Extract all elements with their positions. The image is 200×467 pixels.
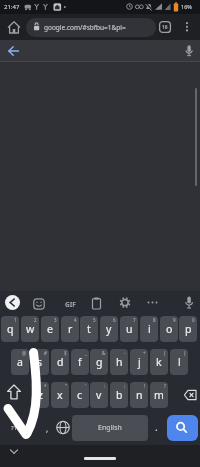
staticText: w [26, 322, 35, 336]
staticText: 16 [162, 24, 168, 31]
button[interactable]: f [71, 349, 89, 375]
button[interactable]: v [90, 382, 108, 408]
staticText: 5 [93, 317, 96, 323]
staticText: - [124, 350, 126, 356]
button[interactable]: d [51, 349, 69, 375]
button[interactable] [145, 296, 159, 310]
button[interactable]: s [31, 349, 49, 375]
button[interactable] [2, 415, 40, 441]
staticText: e [47, 322, 53, 336]
staticText: 2 [34, 317, 37, 323]
staticText: h [116, 355, 123, 369]
button[interactable]: h [110, 349, 128, 375]
staticText: * [44, 383, 47, 389]
staticText: m [154, 388, 164, 402]
button[interactable] [180, 42, 198, 60]
staticText: 6 [113, 317, 116, 323]
staticText: v [96, 388, 102, 402]
button[interactable] [26, 18, 156, 37]
staticText: . [155, 420, 158, 434]
button[interactable]: k [150, 349, 168, 375]
button[interactable]: w [21, 316, 39, 342]
staticText: # [44, 350, 47, 356]
button[interactable]: t [80, 316, 98, 342]
button[interactable]: g [90, 349, 108, 375]
button[interactable] [5, 444, 23, 460]
staticText: 0 [192, 317, 195, 323]
button[interactable]: i [140, 316, 158, 342]
staticText: p [185, 322, 192, 336]
staticText: ?123 [11, 424, 24, 432]
button[interactable]: o [160, 316, 178, 342]
staticText: j [138, 355, 141, 369]
button[interactable]: n [130, 382, 148, 408]
staticText: g [96, 355, 103, 369]
button[interactable]: r [61, 316, 79, 342]
button[interactable] [2, 382, 28, 408]
button[interactable] [150, 415, 164, 441]
staticText: 9 [173, 317, 176, 323]
button[interactable] [181, 19, 195, 35]
button[interactable] [167, 415, 198, 441]
staticText: 21:47 [4, 3, 20, 11]
staticText: google.com/#sbfbu=1&pi= [44, 23, 126, 32]
button[interactable] [89, 297, 104, 311]
staticText: : [104, 383, 106, 389]
button[interactable]: z [31, 382, 49, 408]
button[interactable]: 16 [159, 21, 171, 33]
staticText: d [57, 355, 64, 369]
staticText: _ [85, 350, 87, 356]
button[interactable]: a [11, 349, 29, 375]
staticText: GIF [65, 300, 76, 309]
staticText: 8 [153, 317, 156, 323]
button[interactable] [84, 457, 116, 460]
button[interactable]: c [71, 382, 89, 408]
button[interactable] [5, 295, 20, 310]
button[interactable]: m [150, 382, 168, 408]
button[interactable] [118, 296, 132, 310]
button[interactable]: l [170, 349, 188, 375]
staticText: 3 [54, 317, 57, 323]
button[interactable] [172, 382, 198, 408]
button[interactable] [32, 297, 46, 311]
button[interactable]: y [100, 316, 118, 342]
staticText: ( [164, 350, 166, 356]
button[interactable] [62, 297, 82, 311]
staticText: u [126, 322, 133, 336]
button[interactable] [2, 43, 20, 60]
staticText: @ [22, 350, 27, 356]
staticText: ) [184, 350, 186, 356]
button[interactable]: English [72, 415, 148, 441]
button[interactable]: q [1, 316, 19, 342]
staticText: y [106, 322, 112, 336]
staticText: , [46, 423, 49, 434]
button[interactable]: x [51, 382, 69, 408]
button[interactable]: j [130, 349, 148, 375]
staticText: ? [164, 383, 166, 389]
staticText: q [7, 322, 14, 336]
staticText: 7 [133, 317, 136, 323]
staticText: n [136, 388, 143, 402]
staticText: o [166, 322, 173, 336]
button[interactable]: p [179, 316, 197, 342]
staticText: & [102, 350, 106, 356]
button[interactable] [5, 19, 22, 36]
button[interactable] [41, 415, 55, 441]
staticText: f [78, 355, 82, 369]
staticText: ; [124, 383, 126, 389]
staticText: + [143, 350, 146, 356]
staticText: l [178, 355, 181, 369]
staticText: c [77, 388, 83, 402]
staticText: k [156, 355, 162, 369]
staticText: s [37, 355, 43, 369]
staticText: z [38, 388, 43, 402]
staticText: 1 [14, 317, 17, 323]
button[interactable]: u [120, 316, 138, 342]
button[interactable]: b [110, 382, 128, 408]
button[interactable] [182, 296, 196, 310]
staticText: t [87, 322, 91, 336]
staticText: 16% [181, 3, 192, 10]
button[interactable] [55, 415, 71, 441]
button[interactable]: e [41, 316, 59, 342]
staticText: English [98, 423, 122, 433]
